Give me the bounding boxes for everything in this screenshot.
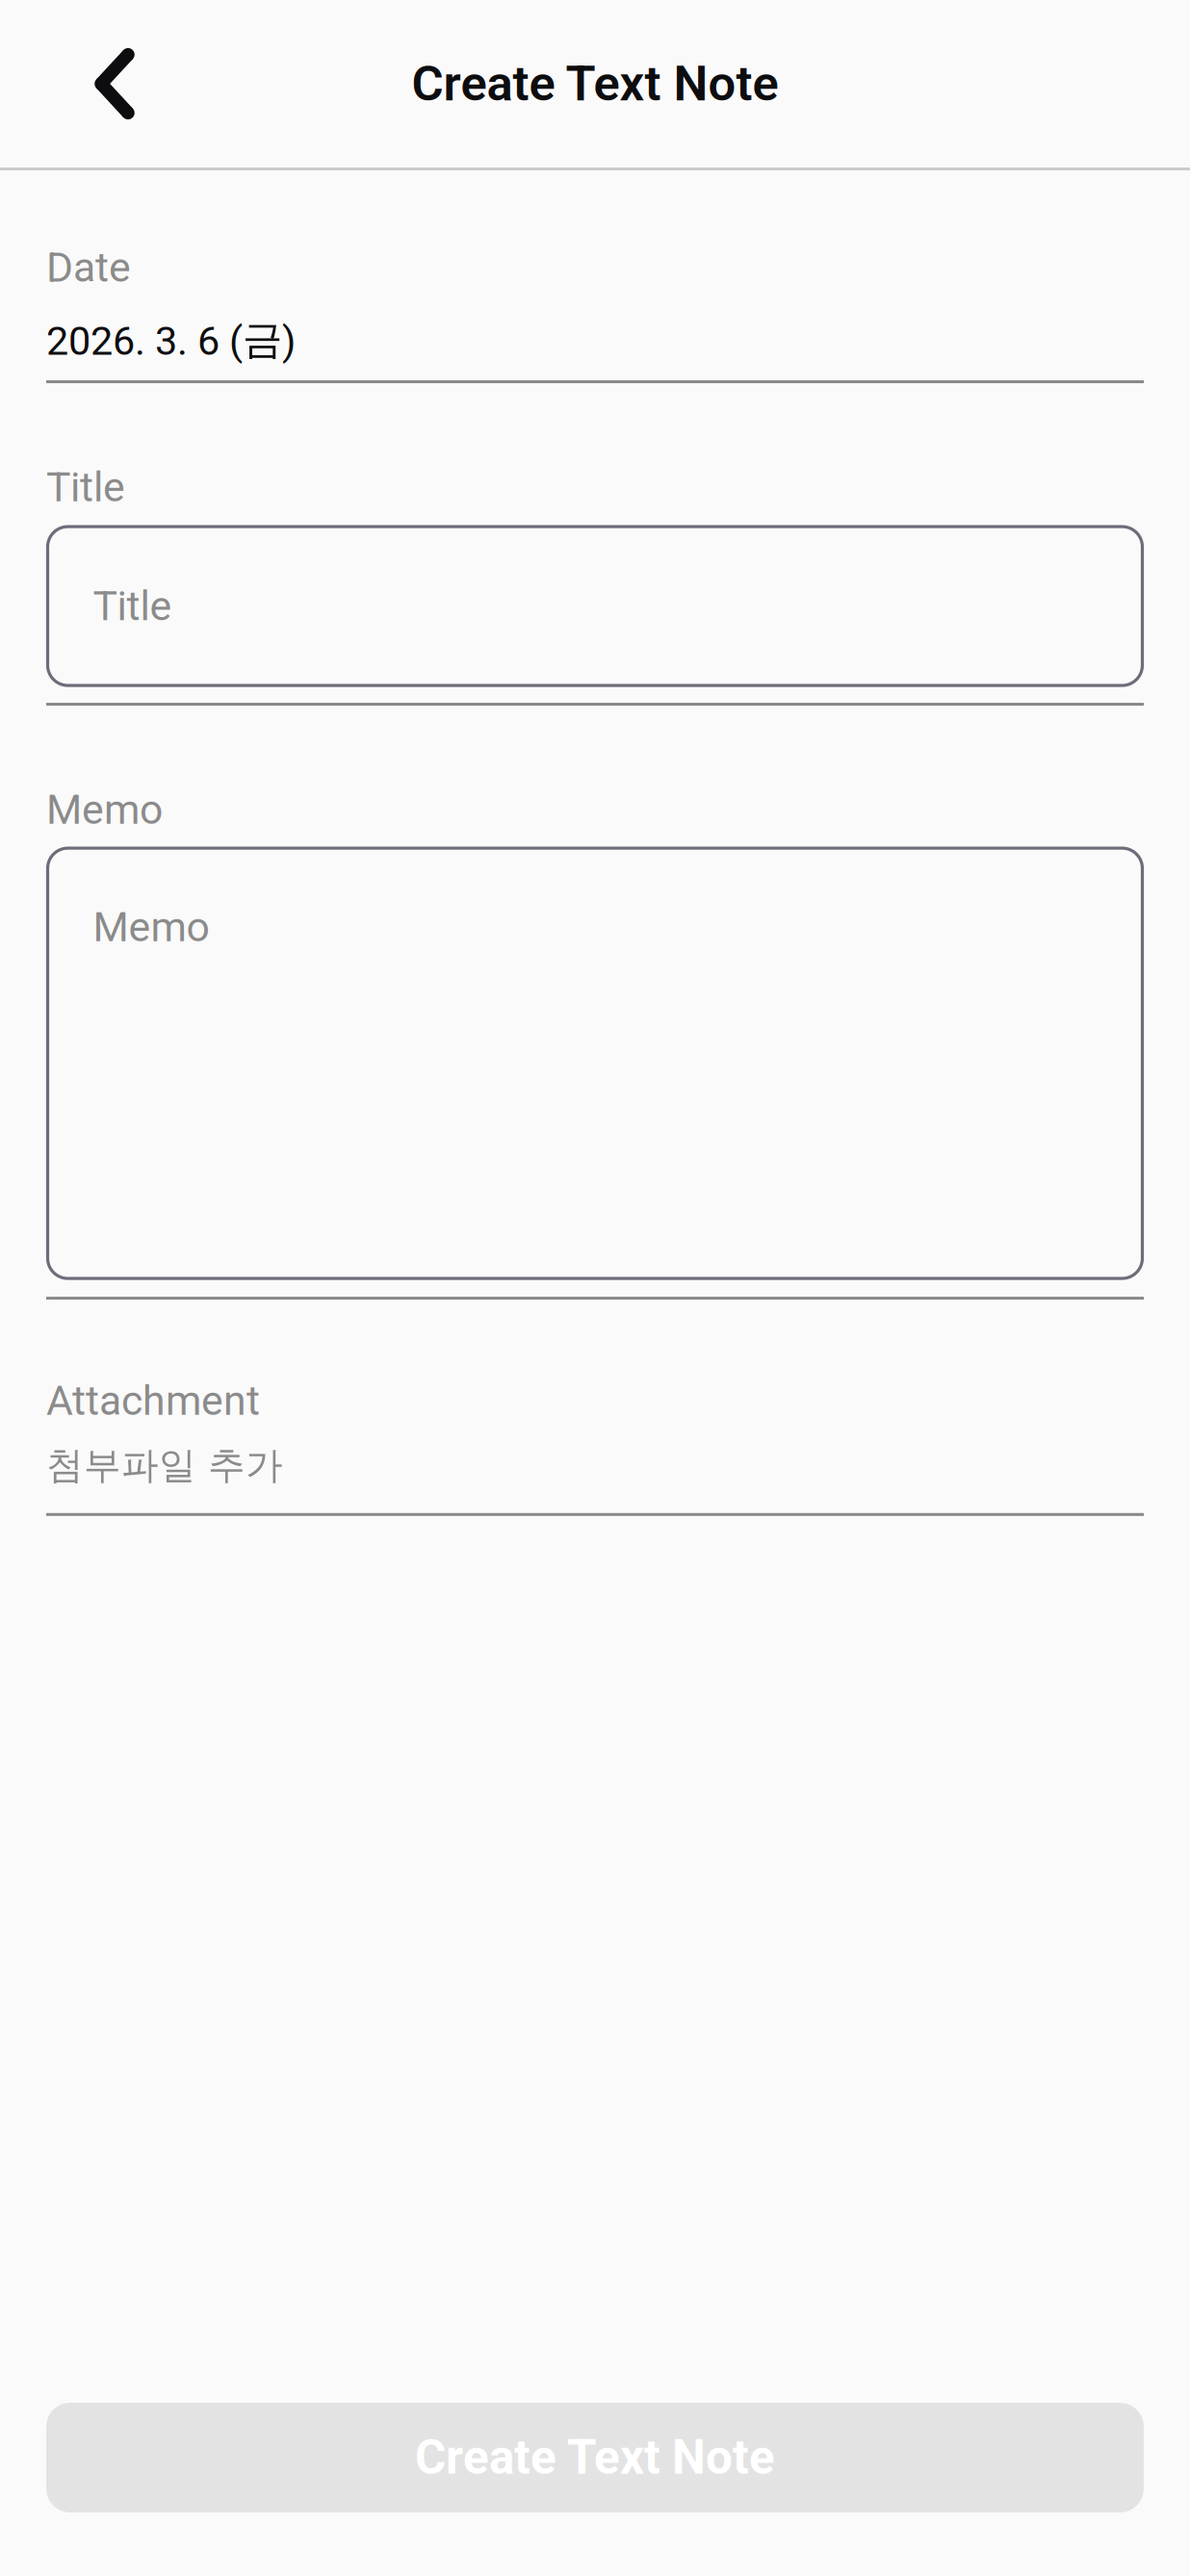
button[interactable]: Memo bbox=[46, 848, 1144, 1278]
staticText: 2026. 3. 6 (금) bbox=[46, 315, 296, 365]
staticText: Create Text Note bbox=[412, 55, 778, 112]
button[interactable]: Title bbox=[46, 527, 1144, 685]
button[interactable]: Create Text Note bbox=[46, 2403, 1144, 2512]
staticText: 첨부파일 추가 bbox=[46, 1442, 283, 1489]
button[interactable]: Back bbox=[55, 24, 174, 143]
button[interactable]: 2026. 3. 6 (금) bbox=[46, 315, 1144, 365]
staticText: Attachment bbox=[46, 1377, 260, 1425]
staticText: Title bbox=[46, 463, 125, 511]
button[interactable]: 첨부파일 추가 bbox=[46, 1442, 1144, 1489]
staticText: Create Text Note bbox=[415, 2430, 775, 2485]
staticText: Memo bbox=[93, 903, 209, 951]
staticText: Title bbox=[93, 582, 172, 630]
staticText: Memo bbox=[46, 786, 163, 834]
staticText: Date bbox=[46, 244, 131, 292]
